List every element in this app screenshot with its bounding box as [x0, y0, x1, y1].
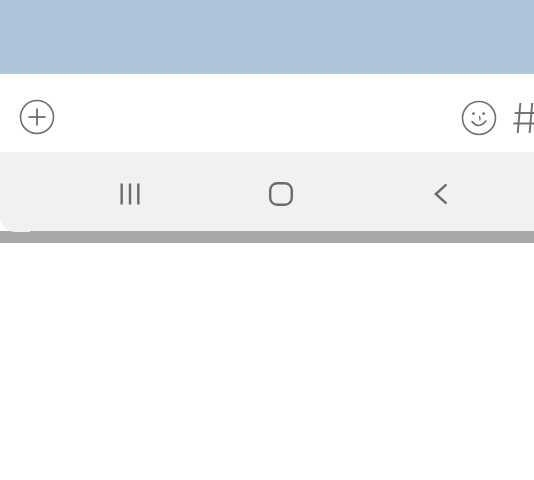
button[interactable]: Add attachment: [13, 93, 61, 141]
button[interactable]: Home: [253, 166, 309, 222]
button[interactable]: Recent apps: [102, 166, 158, 222]
button[interactable]: Hashtag: [512, 95, 534, 141]
button[interactable]: Stickers: [456, 95, 502, 141]
button[interactable]: Back: [413, 166, 469, 222]
